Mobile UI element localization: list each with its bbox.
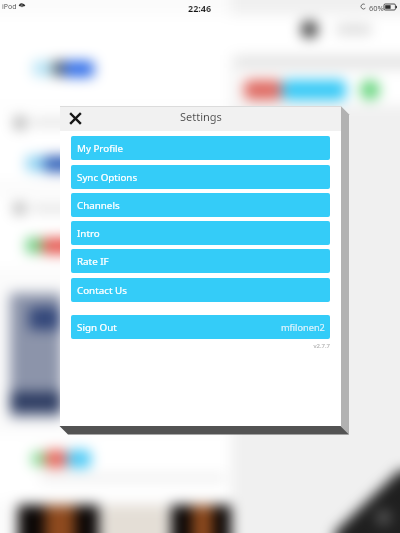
staticText: Contact Us	[77, 284, 127, 297]
staticText: Channels	[77, 199, 120, 212]
button[interactable]: My Profile	[71, 136, 330, 160]
staticText: Sync Options	[77, 171, 138, 184]
staticText: Rate IF	[77, 255, 109, 268]
staticText: Sign Out	[77, 321, 117, 334]
staticText: Settings	[180, 109, 222, 124]
button[interactable]: Contact Us	[71, 278, 330, 302]
staticText: iPod	[2, 2, 17, 12]
button[interactable]: Sync Options	[71, 165, 330, 189]
staticText: Intro	[77, 227, 100, 240]
staticText: My Profile	[77, 142, 124, 155]
staticText: 22:46	[188, 2, 212, 14]
button[interactable]: Channels	[71, 193, 330, 217]
button[interactable]: Rate IF	[71, 249, 330, 273]
staticText: mfilonen2	[281, 321, 325, 334]
button[interactable]: Close	[60, 106, 88, 131]
button[interactable]: Sign Out	[71, 315, 330, 339]
staticText: v2.7.7	[71, 342, 330, 350]
button[interactable]: Intro	[71, 221, 330, 245]
staticText: 60%	[369, 3, 384, 13]
